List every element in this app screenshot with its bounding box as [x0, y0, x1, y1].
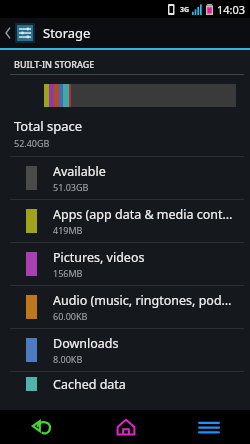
button[interactable]: Apps (app data & media cont…: [0, 200, 250, 243]
button[interactable]: Back: [0, 410, 84, 444]
staticText: Audio (music, ringtones, pod…: [53, 292, 232, 309]
staticText: 14:03: [217, 2, 246, 17]
staticText: 60.00KB: [53, 310, 88, 322]
button[interactable]: Total space: [0, 107, 250, 157]
staticText: 3G: [180, 5, 190, 15]
other: Back: [4, 26, 12, 40]
other: Storage settings icon: [15, 23, 35, 43]
staticText: Available: [53, 163, 106, 180]
button[interactable]: Available: [0, 157, 250, 200]
staticText: Pictures, videos: [53, 249, 145, 266]
staticText: 52.40GB: [14, 137, 50, 149]
button[interactable]: Menu: [167, 410, 250, 444]
button[interactable]: Cached data: [0, 372, 250, 396]
button[interactable]: Downloads: [0, 329, 250, 372]
staticText: 156MB: [53, 267, 83, 279]
button[interactable]: Audio (music, ringtones, pod…: [0, 286, 250, 329]
staticText: Storage: [43, 24, 91, 42]
button[interactable]: Back: [0, 18, 250, 48]
staticText: Total space: [14, 117, 82, 135]
staticText: 51.03GB: [53, 181, 89, 193]
staticText: Apps (app data & media cont…: [53, 206, 233, 223]
staticText: Downloads: [53, 335, 119, 352]
staticText: 8.00KB: [53, 353, 83, 365]
staticText: 419MB: [53, 224, 83, 236]
staticText: BUILT-IN STORAGE: [14, 58, 95, 70]
button[interactable]: Home: [84, 410, 167, 444]
button[interactable]: Pictures, videos: [0, 243, 250, 286]
staticText: Cached data: [53, 376, 126, 393]
